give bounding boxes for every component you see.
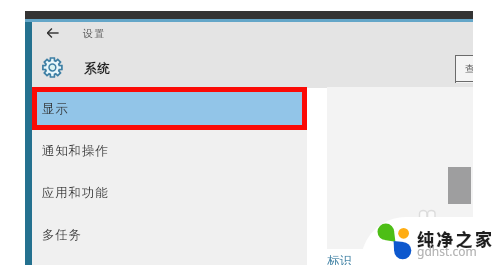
button[interactable]: 显示 bbox=[32, 87, 307, 130]
staticText: gdhst.com bbox=[417, 243, 477, 259]
staticText: 通知和操作 bbox=[42, 143, 109, 159]
button[interactable]: 多任务 bbox=[32, 214, 307, 255]
button[interactable]: 标识 bbox=[327, 253, 355, 265]
button[interactable]: Back bbox=[41, 21, 65, 45]
staticText: 纯净之家 bbox=[417, 226, 495, 251]
button[interactable]: 通知和操作 bbox=[32, 130, 307, 172]
staticText: 应用和功能 bbox=[42, 185, 109, 201]
button[interactable]: 设置 bbox=[83, 25, 109, 42]
staticText: 查找设置 bbox=[465, 63, 473, 75]
button[interactable]: 查找设置 bbox=[455, 55, 473, 83]
staticText: 系统 bbox=[84, 61, 111, 77]
staticText: 显示 bbox=[42, 101, 69, 117]
staticText: 标识 bbox=[327, 253, 352, 265]
button[interactable]: 应用和功能 bbox=[32, 172, 307, 213]
staticText: 多任务 bbox=[42, 227, 82, 243]
staticText: 设置 bbox=[83, 27, 106, 40]
button[interactable]: 系统 bbox=[84, 59, 114, 78]
